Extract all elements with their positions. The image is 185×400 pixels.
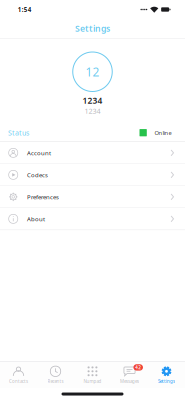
button[interactable]: 42 xyxy=(111,362,148,388)
button[interactable]: Contacts xyxy=(0,362,37,388)
staticText: Codecs xyxy=(27,171,48,179)
button[interactable]: Preferences xyxy=(0,186,185,208)
staticText: Preferences xyxy=(27,193,59,201)
button[interactable]: Settings xyxy=(0,19,185,38)
button[interactable]: Recents xyxy=(37,362,74,388)
staticText: Settings xyxy=(75,23,110,34)
staticText: Online xyxy=(154,129,171,137)
staticText: Settings xyxy=(158,378,175,384)
staticText: Numpad xyxy=(83,378,101,384)
staticText: Messages xyxy=(120,378,139,384)
button[interactable]: Settings xyxy=(148,362,185,388)
button[interactable]: Account xyxy=(0,142,185,164)
staticText: 12 xyxy=(85,64,99,80)
staticText: About xyxy=(27,215,45,223)
staticText: 42 xyxy=(135,364,141,370)
staticText: Contacts xyxy=(9,378,28,384)
staticText: 1234 xyxy=(82,95,102,106)
button[interactable]: Numpad xyxy=(74,362,111,388)
staticText: Status xyxy=(8,128,29,137)
staticText: Recents xyxy=(47,378,63,384)
staticText: Account xyxy=(27,149,51,157)
staticText: 1:54 xyxy=(18,5,32,14)
button[interactable]: About xyxy=(0,208,185,230)
button[interactable]: Codecs xyxy=(0,164,185,186)
staticText: 1234 xyxy=(84,106,100,116)
